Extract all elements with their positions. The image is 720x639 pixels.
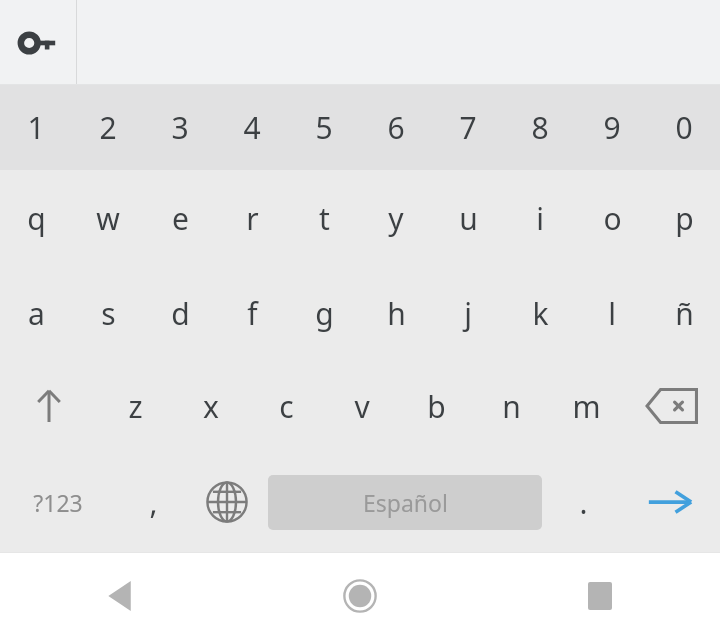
staticText: c (279, 386, 294, 427)
button[interactable]: Back (0, 552, 240, 639)
staticText: e (172, 198, 189, 239)
button[interactable]: s (72, 266, 144, 360)
staticText: 0 (675, 107, 693, 148)
staticText: ñ (675, 293, 694, 334)
button[interactable]: a (0, 266, 72, 360)
staticText: b (427, 386, 446, 427)
button[interactable]: Password key (0, 0, 76, 85)
staticText: s (101, 293, 116, 334)
staticText: 8 (531, 107, 549, 148)
button[interactable]: Shift (0, 360, 97, 452)
staticText: Español (363, 487, 448, 518)
staticText: i (536, 198, 544, 239)
staticText: x (203, 386, 219, 427)
button[interactable]: ñ (648, 266, 720, 360)
staticText: k (532, 293, 549, 334)
button[interactable]: 3 (144, 85, 216, 170)
button[interactable]: l (576, 266, 648, 360)
button[interactable]: , (116, 452, 190, 552)
staticText: 6 (387, 107, 405, 148)
button[interactable]: Enter (620, 452, 720, 552)
staticText: . (579, 482, 588, 523)
button[interactable]: ?123 (0, 452, 116, 552)
staticText: 3 (171, 107, 189, 148)
button[interactable]: 7 (432, 85, 504, 170)
button[interactable]: b (399, 360, 474, 452)
button[interactable]: 8 (504, 85, 576, 170)
button[interactable]: 2 (72, 85, 144, 170)
button[interactable]: q (0, 170, 72, 266)
button[interactable]: r (216, 170, 288, 266)
staticText: q (27, 198, 46, 239)
button[interactable]: f (216, 266, 288, 360)
button[interactable]: i (504, 170, 576, 266)
staticText: , (149, 482, 158, 523)
staticText: a (28, 293, 45, 334)
staticText: f (247, 293, 258, 334)
button[interactable]: Home (240, 552, 480, 639)
button[interactable]: d (144, 266, 216, 360)
staticText: z (128, 386, 143, 427)
staticText: d (171, 293, 190, 334)
staticText: t (319, 198, 330, 239)
staticText: 4 (243, 107, 261, 148)
button[interactable]: 0 (648, 85, 720, 170)
staticText: 2 (99, 107, 117, 148)
staticText: v (354, 386, 370, 427)
button[interactable]: v (324, 360, 399, 452)
button[interactable]: p (648, 170, 720, 266)
button[interactable]: 4 (216, 85, 288, 170)
button[interactable]: y (360, 170, 432, 266)
staticText: m (572, 386, 601, 427)
button[interactable]: Español (268, 475, 542, 530)
button[interactable]: 6 (360, 85, 432, 170)
staticText: 7 (459, 107, 477, 148)
button[interactable]: 9 (576, 85, 648, 170)
staticText: 9 (603, 107, 621, 148)
button[interactable]: j (432, 266, 504, 360)
button[interactable]: g (288, 266, 360, 360)
button[interactable]: e (144, 170, 216, 266)
button[interactable]: o (576, 170, 648, 266)
button[interactable]: c (249, 360, 324, 452)
button[interactable]: m (549, 360, 624, 452)
button[interactable]: 1 (0, 85, 72, 170)
button[interactable]: Backspace (624, 360, 720, 452)
button[interactable]: . (546, 452, 620, 552)
staticText: u (459, 198, 478, 239)
staticText: y (388, 198, 404, 239)
button[interactable]: w (72, 170, 144, 266)
button[interactable]: t (288, 170, 360, 266)
button[interactable]: n (474, 360, 549, 452)
staticText: w (96, 198, 120, 239)
staticText: r (246, 198, 259, 239)
button[interactable]: x (173, 360, 249, 452)
button[interactable]: z (97, 360, 173, 452)
staticText: o (603, 198, 622, 239)
staticText: l (608, 293, 616, 334)
staticText: 5 (315, 107, 333, 148)
button[interactable]: Change language (190, 452, 264, 552)
staticText: ?123 (33, 487, 83, 518)
button[interactable]: u (432, 170, 504, 266)
staticText: h (387, 293, 406, 334)
staticText: g (315, 293, 334, 334)
button[interactable]: k (504, 266, 576, 360)
staticText: n (502, 386, 521, 427)
staticText: 1 (27, 107, 45, 148)
button[interactable]: Recent apps (480, 552, 720, 639)
staticText: p (675, 198, 694, 239)
staticText: j (464, 293, 472, 334)
button[interactable]: 5 (288, 85, 360, 170)
button[interactable]: h (360, 266, 432, 360)
